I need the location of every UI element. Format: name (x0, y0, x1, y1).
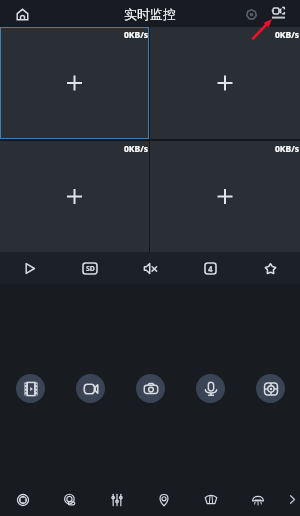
button[interactable]: Settings (240, 3, 262, 25)
button[interactable]: Home (10, 2, 34, 26)
button[interactable]: Playback (16, 374, 45, 403)
staticText: 4 (208, 263, 213, 274)
button[interactable]: Zoom lens (46, 483, 93, 516)
staticText: 0KB/s (275, 29, 299, 41)
staticText: 0KB/s (275, 143, 299, 155)
button[interactable]: More (285, 492, 300, 507)
button[interactable]: 0KB/s (150, 141, 300, 252)
button[interactable]: Microphone (196, 374, 225, 403)
button[interactable]: Stream quality SD (60, 252, 120, 284)
button[interactable]: 0KB/s (150, 27, 300, 139)
button[interactable]: Record video (76, 374, 105, 403)
button[interactable]: Mute (120, 252, 180, 284)
staticText: SD (86, 264, 95, 274)
button[interactable]: Favorite (240, 252, 300, 284)
button[interactable]: Take snapshot (136, 374, 165, 403)
button[interactable]: Split screen 4 (180, 252, 240, 284)
button[interactable]: 0KB/s (0, 141, 149, 252)
button[interactable]: Focus (256, 374, 285, 403)
button[interactable]: Pan and tilt (0, 483, 46, 516)
button[interactable]: Position preset (140, 483, 187, 516)
staticText: 0KB/s (124, 29, 148, 41)
button[interactable]: 0KB/s (0, 27, 149, 139)
button[interactable]: Live view (267, 0, 289, 27)
button[interactable]: Washer (234, 483, 281, 516)
staticText: 0KB/s (124, 143, 148, 155)
button[interactable]: Wiper (187, 483, 234, 516)
button[interactable]: Image settings (93, 483, 140, 516)
button[interactable]: Play (0, 252, 60, 284)
staticText: 实时监控 (124, 6, 176, 22)
